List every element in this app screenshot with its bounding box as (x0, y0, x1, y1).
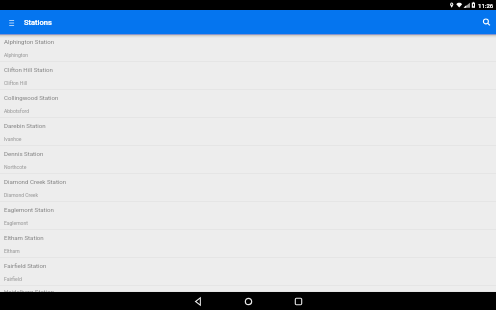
button[interactable]: Heidelberg Station (0, 286, 496, 292)
staticText: Diamond Creek (4, 192, 39, 198)
button[interactable]: Back (173, 292, 223, 310)
staticText: Darebin Station (4, 122, 46, 129)
button[interactable]: Fairfield Station (0, 258, 496, 286)
button[interactable]: Search (472, 10, 496, 34)
button[interactable]: Clifton Hill Station (0, 62, 496, 90)
staticText: Clifton Hill (4, 80, 28, 86)
button[interactable]: Diamond Creek Station (0, 174, 496, 202)
staticText: Abbotsford (4, 108, 30, 114)
button[interactable]: Dennis Station (0, 146, 496, 174)
staticText: Stations (24, 18, 52, 27)
staticText: Alphington (4, 52, 29, 58)
staticText: Heidelberg Station (4, 288, 55, 292)
button[interactable]: Alphington Station (0, 34, 496, 62)
button[interactable]: Recent apps (273, 292, 323, 310)
button[interactable]: Darebin Station (0, 118, 496, 146)
staticText: 11:26 (478, 2, 494, 9)
staticText: Fairfield (4, 276, 22, 282)
staticText: Dennis Station (4, 150, 44, 157)
staticText: Eltham (4, 248, 20, 254)
staticText: Heidelberg Station (4, 290, 55, 292)
button[interactable]: Eaglemont Station (0, 202, 496, 230)
staticText: Eltham Station (4, 234, 44, 241)
staticText: Northcote (4, 164, 27, 170)
button[interactable]: Home (223, 292, 273, 310)
staticText: Collingwood Station (4, 94, 59, 101)
staticText: Alphington Station (4, 38, 55, 45)
button[interactable]: Eltham Station (0, 230, 496, 258)
button[interactable]: Heidelberg Station (0, 286, 496, 292)
button[interactable]: Open navigation drawer (0, 10, 24, 34)
staticText: Fairfield Station (4, 262, 47, 269)
staticText: Eaglemont (4, 220, 28, 226)
button[interactable]: Collingwood Station (0, 90, 496, 118)
staticText: Clifton Hill Station (4, 66, 53, 73)
staticText: Ivanhoe (4, 136, 22, 142)
staticText: Eaglemont Station (4, 206, 54, 213)
staticText: Diamond Creek Station (4, 178, 67, 185)
